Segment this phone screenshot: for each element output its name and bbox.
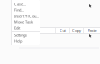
button[interactable]: Help [11,38,40,44]
staticText: Help [14,38,22,44]
button[interactable]: Copy [70,27,83,34]
button[interactable]: Cut [56,27,69,34]
staticText: Paste [87,28,96,33]
button[interactable]: Move Task [11,19,40,25]
staticText: Settings [14,32,27,38]
staticText: Case… [14,1,26,7]
button[interactable]: Insert YTCount… [11,13,40,19]
button[interactable]: Case… [11,1,40,7]
staticText: Find… [14,7,24,13]
button[interactable]: Find… [11,7,40,13]
staticText: Edit [14,25,20,31]
button[interactable]: Settings [11,32,40,38]
staticText: Insert YTCount… [14,13,40,19]
button[interactable]: Paste [84,27,100,34]
staticText: Copy [72,28,81,33]
button[interactable]: Edit [11,25,40,31]
staticText: Move Task [14,19,33,25]
staticText: Cut [59,28,65,33]
